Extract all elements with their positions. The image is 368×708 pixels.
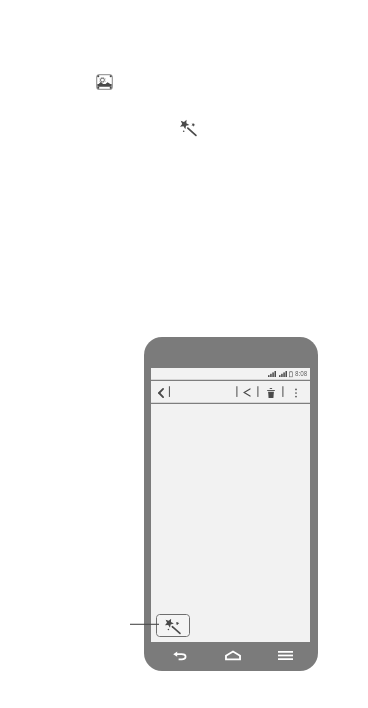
button[interactable]: Recents xyxy=(272,645,299,666)
button[interactable]: Auto enhance xyxy=(156,614,190,637)
button[interactable]: Share xyxy=(238,384,255,401)
button[interactable]: More options xyxy=(287,384,304,401)
button[interactable]: Home xyxy=(219,645,246,666)
button[interactable]: Delete xyxy=(262,384,279,401)
staticText: 8:08 xyxy=(295,369,308,377)
button[interactable]: Navigate up xyxy=(152,384,169,401)
button[interactable]: Back xyxy=(166,645,193,666)
